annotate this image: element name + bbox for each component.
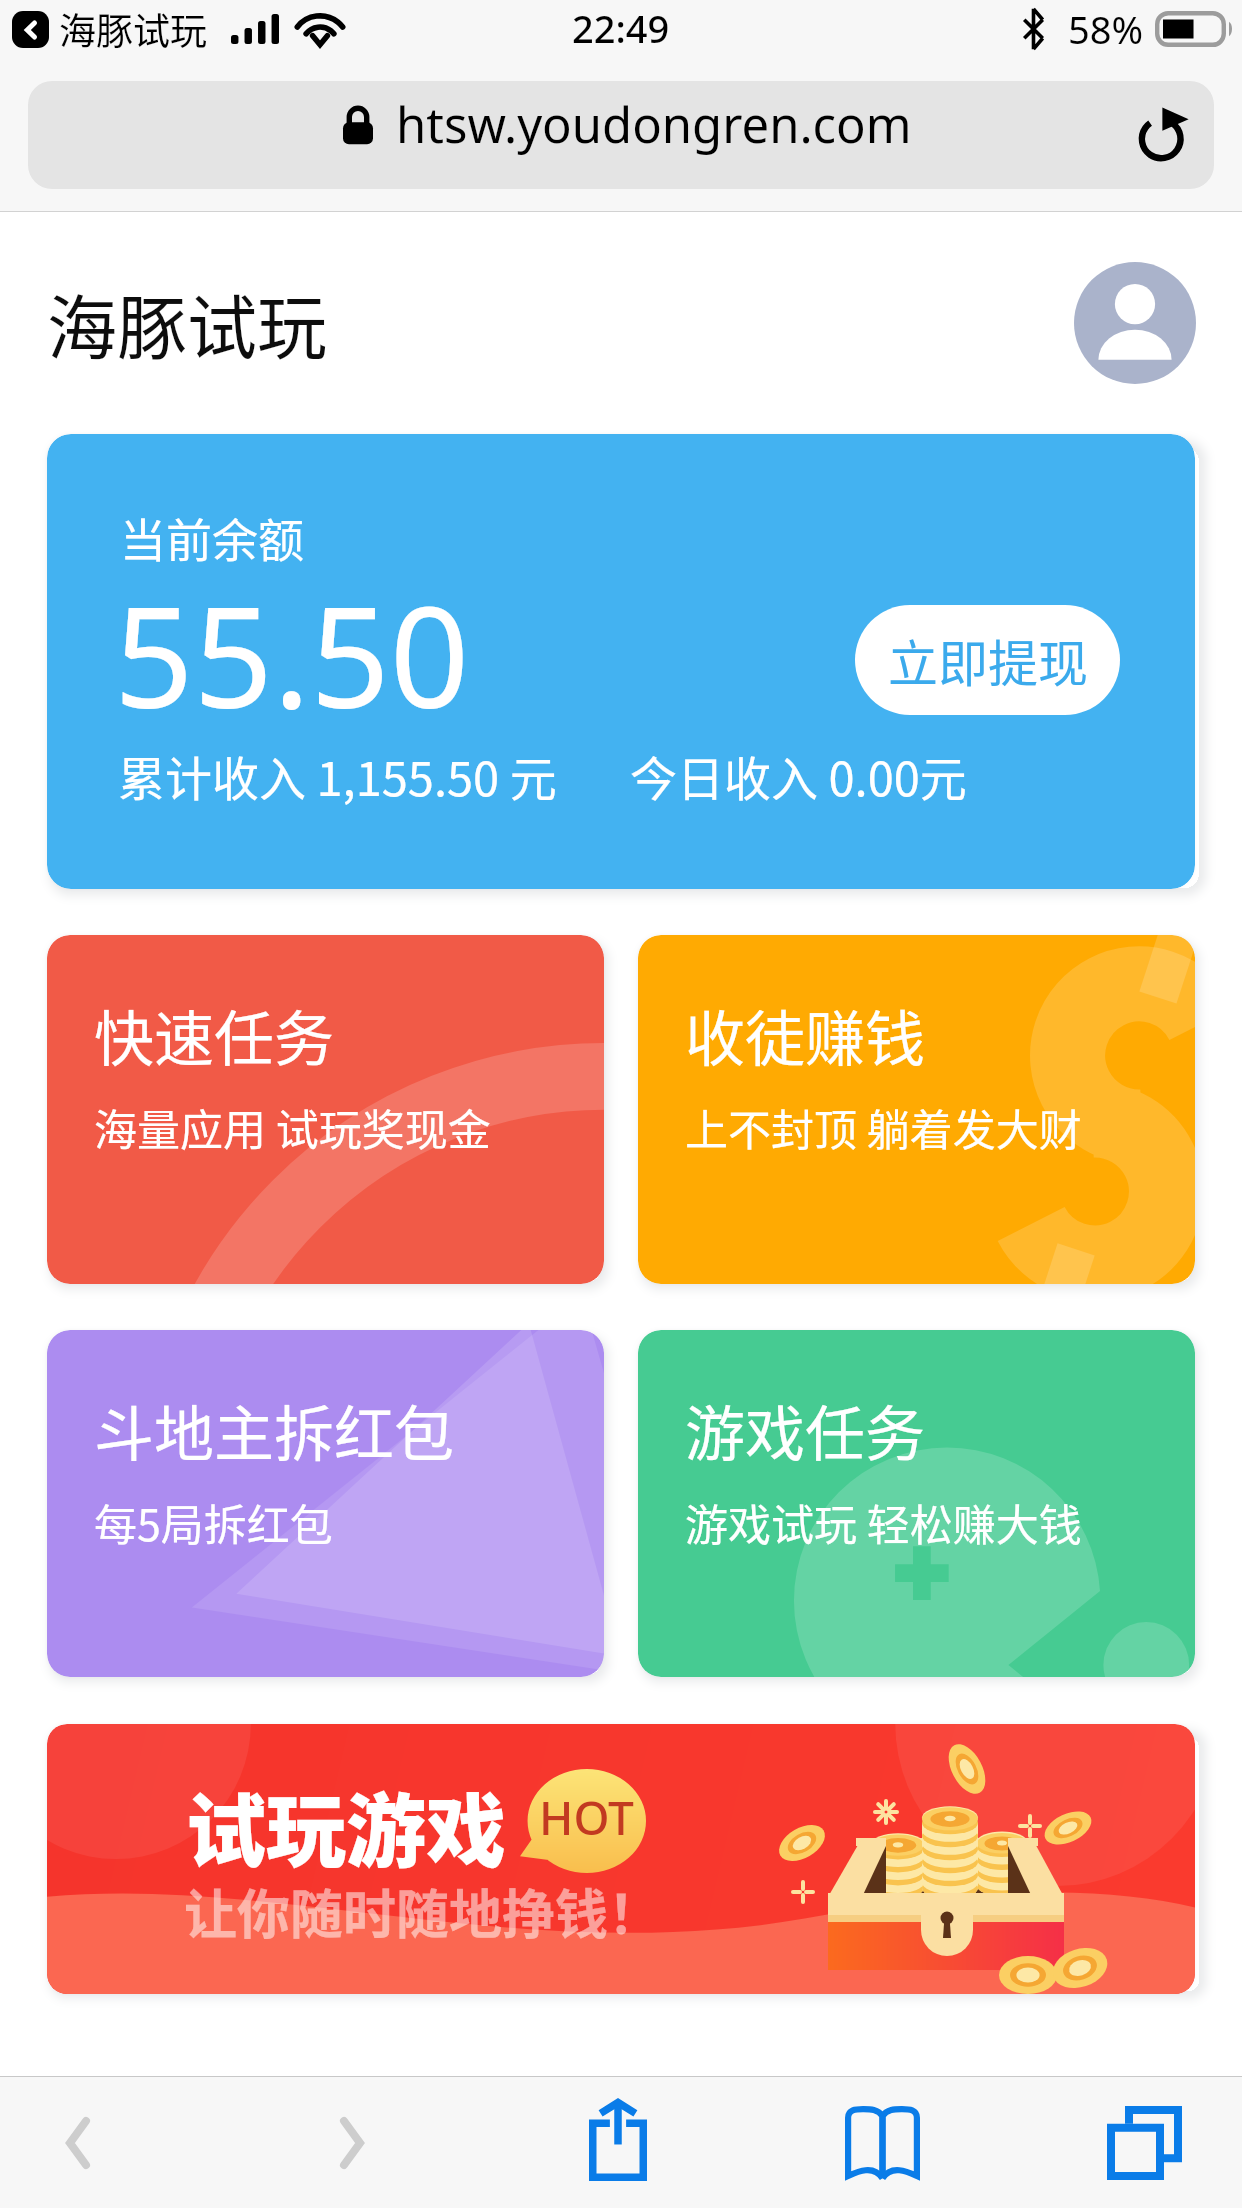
staticText: 收徒赚钱 [685,991,925,1078]
button[interactable]: Tabs [1020,2077,1242,2208]
button[interactable]: htsw.youdongren.com [28,81,1214,189]
staticText: 让你随时随地挣钱！ [184,1873,661,1950]
staticText: 试玩游戏 [186,1767,506,1883]
button[interactable]: 立即提现 [855,605,1120,715]
staticText: 58% [1068,3,1144,55]
staticText: 今日收入 0.00元 [630,741,967,809]
button[interactable]: 当前余额 [47,434,1195,889]
staticText: 立即提现 [888,624,1088,696]
staticText: 每5局拆红包 [94,1491,333,1553]
staticText: 当前余额 [120,504,304,571]
staticText: 斗地主拆红包 [94,1386,454,1473]
button[interactable]: Forward [228,2077,476,2208]
button[interactable]: Share [494,2077,742,2208]
button[interactable]: Account [1074,262,1196,384]
button[interactable]: Back [0,2077,155,2208]
button[interactable]: 快速任务 [47,935,604,1284]
button[interactable]: Bookmarks [758,2077,1006,2208]
staticText: 上不封顶 躺着发大财 [685,1096,1082,1158]
staticText: 快速任务 [94,991,334,1078]
button[interactable]: Back to app [12,11,49,48]
staticText: 海豚试玩 [47,273,327,374]
staticText: 海量应用 试玩奖现金 [94,1096,491,1158]
staticText: htsw.youdongren.com [396,91,912,158]
staticText: 海豚试玩 [59,2,207,56]
button[interactable]: 游戏任务 [638,1330,1195,1677]
button[interactable]: 收徒赚钱 [638,935,1195,1284]
staticText: 累计收入 1,155.50 元 [118,741,557,809]
button[interactable]: 试玩游戏 [47,1724,1195,1994]
button[interactable]: Reload page [1132,103,1196,167]
staticText: HOT [539,1786,634,1849]
staticText: 55.50 [114,559,470,748]
staticText: 游戏试玩 轻松赚大钱 [685,1491,1082,1553]
button[interactable]: 斗地主拆红包 [47,1330,604,1677]
staticText: 游戏任务 [685,1386,925,1473]
staticText: 22:49 [572,2,670,54]
